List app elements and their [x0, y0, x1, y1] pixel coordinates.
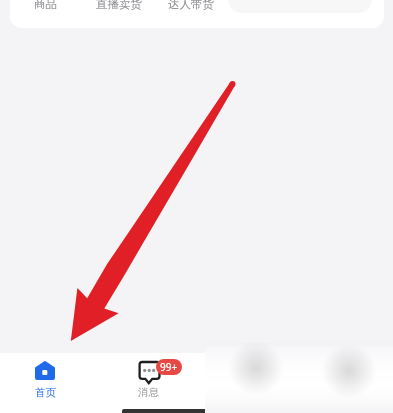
staticText: 首页 [35, 386, 56, 399]
staticText: 消息 [138, 386, 159, 399]
button[interactable]: 达人带货 [168, 0, 214, 11]
button[interactable]: 商品 [34, 0, 57, 11]
button[interactable]: 99+ [118, 354, 178, 400]
staticText: 达人带货 [168, 0, 214, 11]
button[interactable]: 首页 [15, 354, 75, 400]
staticText: 商品 [34, 0, 57, 11]
staticText: 直播卖货 [96, 0, 142, 11]
staticText: 99+ [160, 360, 178, 374]
button[interactable]: 直播卖货 [96, 0, 142, 11]
